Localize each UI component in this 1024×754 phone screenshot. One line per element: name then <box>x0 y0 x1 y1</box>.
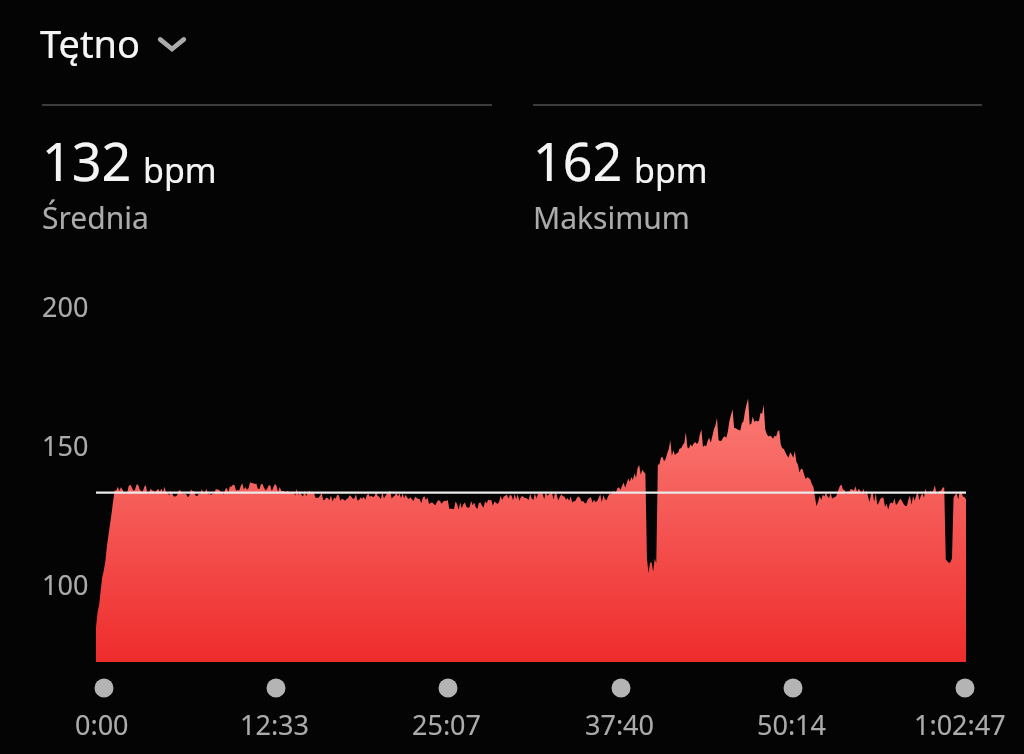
staticText: 100 <box>42 566 89 603</box>
button[interactable]: 132 <box>42 104 492 238</box>
button[interactable]: 162 <box>533 104 982 238</box>
staticText: bpm <box>143 147 217 193</box>
staticText: 0:00 <box>75 706 129 743</box>
staticText: 50:14 <box>757 706 827 743</box>
staticText: Maksimum <box>533 197 690 238</box>
staticText: 200 <box>42 288 89 325</box>
staticText: 150 <box>42 427 89 464</box>
staticText: 12:33 <box>240 706 310 743</box>
button[interactable]: Tętno <box>40 17 190 69</box>
staticText: bpm <box>634 147 708 193</box>
other: Expand <box>154 25 190 61</box>
staticText: 162 <box>533 125 623 196</box>
staticText: 25:07 <box>412 706 482 743</box>
staticText: 132 <box>42 125 132 196</box>
staticText: 1:02:47 <box>914 706 1006 743</box>
staticText: Średnia <box>42 197 149 238</box>
staticText: 37:40 <box>585 706 655 743</box>
staticText: Tętno <box>40 17 141 69</box>
